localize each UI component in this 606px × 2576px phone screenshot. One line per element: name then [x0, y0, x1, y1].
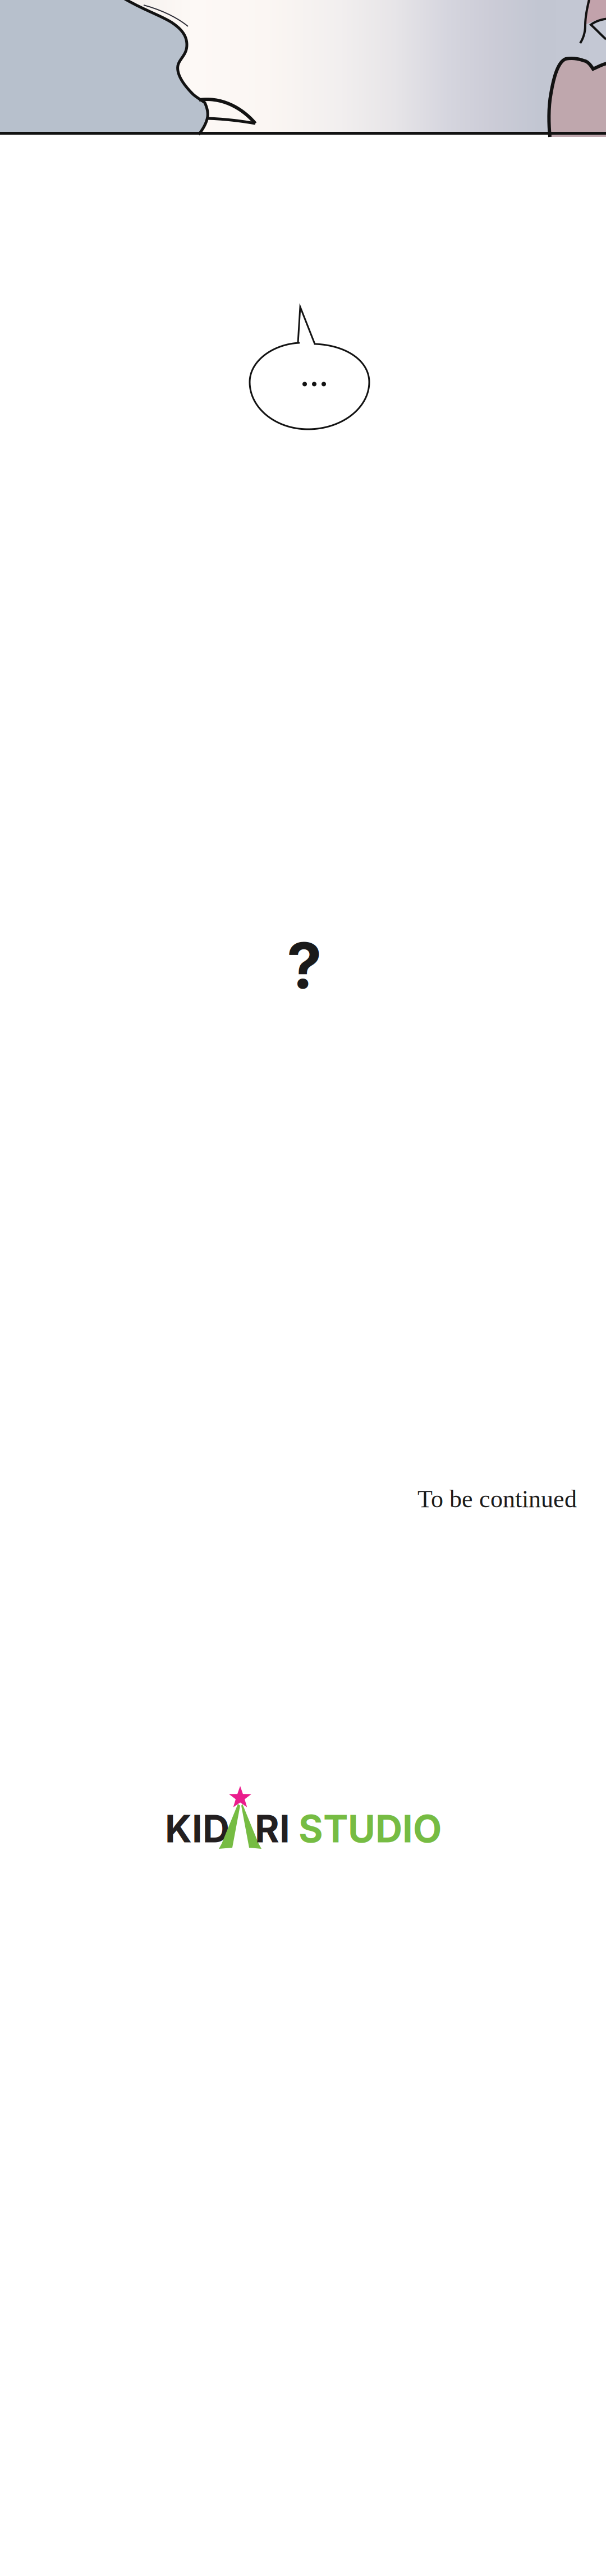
staticText: RI [255, 1806, 290, 1851]
staticText: To be continued [417, 1485, 577, 1513]
staticText: KID [165, 1806, 229, 1851]
staticText: STUDIO [299, 1806, 442, 1851]
staticText: ? [287, 927, 322, 1004]
